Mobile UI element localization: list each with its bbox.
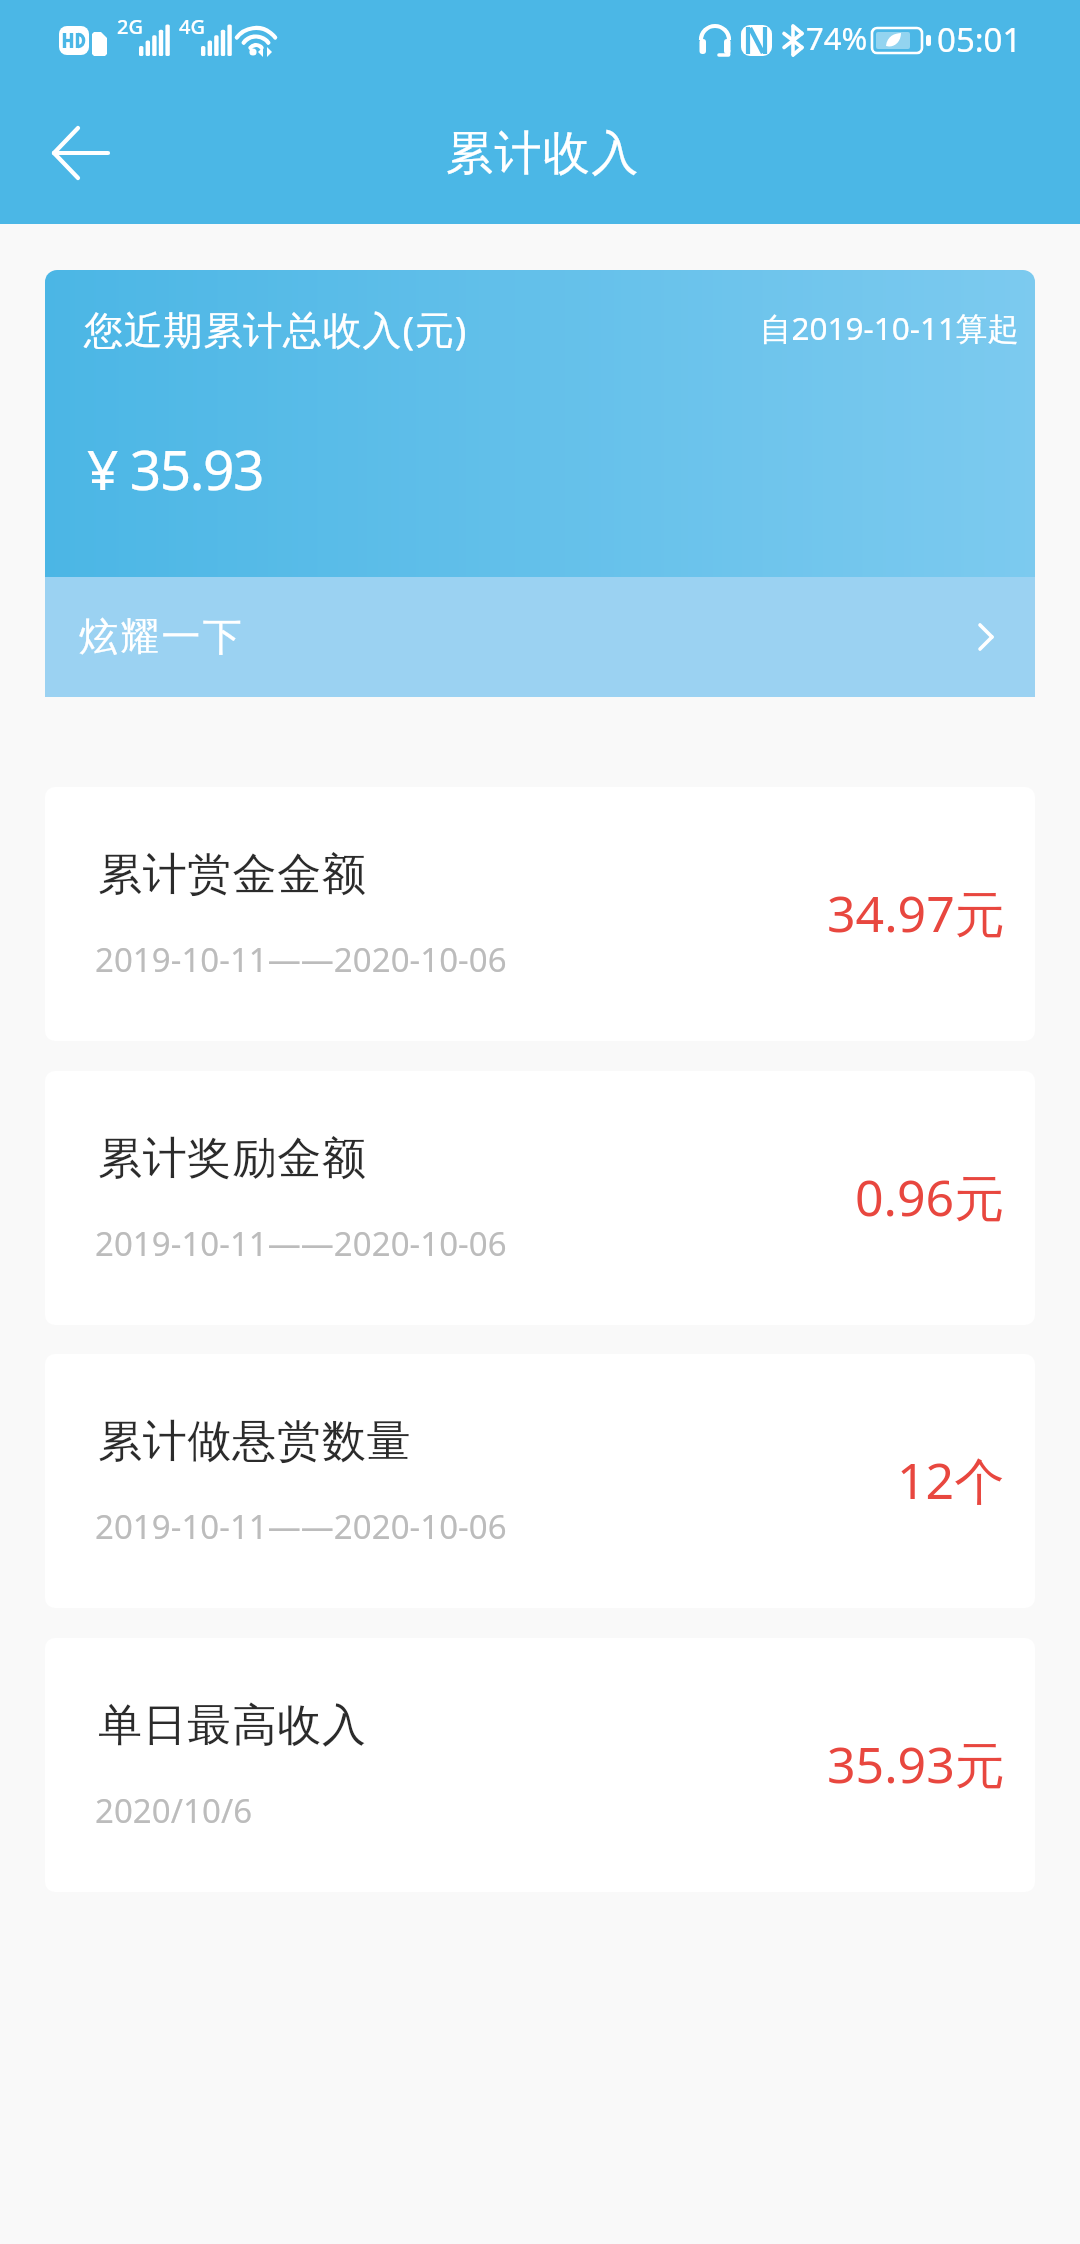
staticText: 累计赏金金额 [98,847,367,902]
button[interactable]: 累计赏金金额 [45,787,1035,1041]
staticText: 35.93元 [827,1730,1005,1798]
staticText: 您近期累计总收入(元) [84,302,468,355]
staticText: 2019-10-11——2020-10-06 [95,937,507,982]
staticText: 炫耀一下 [79,612,244,661]
button[interactable]: Back [30,105,126,201]
button[interactable]: 单日最高收入 [45,1638,1035,1892]
staticText: 累计收入 [3,124,1080,183]
button[interactable]: 累计做悬赏数量 [45,1354,1035,1608]
staticText: 74% [806,17,868,59]
staticText: 0.96元 [855,1163,1005,1231]
button[interactable]: 累计奖励金额 [45,1071,1035,1325]
staticText: 自2019-10-11算起 [760,306,1019,349]
staticText: ¥ 35.93 [87,431,263,506]
staticText: 4G [179,13,205,40]
staticText: 单日最高收入 [98,1698,367,1753]
staticText: 05:01 [937,17,1022,62]
staticText: 12个 [897,1446,1005,1514]
staticText: 2020/10/6 [95,1788,253,1833]
button[interactable]: 炫耀一下 [45,577,1035,697]
staticText: 累计做悬赏数量 [98,1414,412,1469]
staticText: 2G [117,13,143,40]
staticText: 累计奖励金额 [98,1131,367,1186]
staticText: 2019-10-11——2020-10-06 [95,1221,507,1266]
staticText: 34.97元 [827,879,1005,947]
staticText: 2019-10-11——2020-10-06 [95,1504,507,1549]
